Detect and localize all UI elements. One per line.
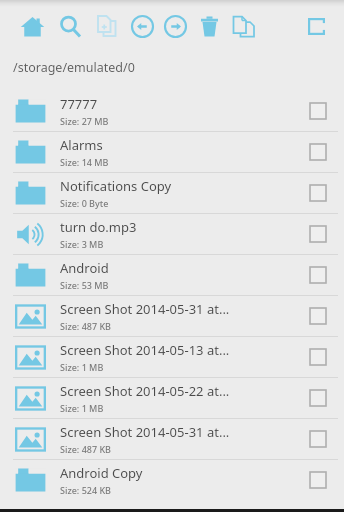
button[interactable]: Paste bbox=[228, 11, 258, 41]
staticText: Size: 1 MB bbox=[60, 361, 104, 373]
button[interactable]: Search bbox=[55, 11, 85, 41]
button[interactable]: Screen Shot 2014-05-22 at... bbox=[0, 378, 344, 418]
staticText: 77777 bbox=[60, 95, 98, 113]
button[interactable]: Delete bbox=[194, 11, 224, 41]
staticText: Android bbox=[60, 259, 109, 277]
button[interactable]: Alarms bbox=[0, 132, 344, 172]
button[interactable]: turn do.mp3 bbox=[0, 214, 344, 254]
staticText: Size: 27 MB bbox=[60, 115, 109, 127]
staticText: /storage/emulated/0 bbox=[13, 59, 135, 76]
button[interactable]: Android Copy bbox=[0, 460, 344, 500]
button[interactable]: Select 77777 bbox=[299, 92, 337, 130]
staticText: Screen Shot 2014-05-22 at... bbox=[60, 382, 230, 400]
button[interactable]: Copy bbox=[92, 11, 122, 41]
button[interactable]: Select Android Copy bbox=[299, 461, 337, 499]
button[interactable]: Select Alarms bbox=[299, 133, 337, 171]
staticText: Alarms bbox=[60, 136, 103, 154]
button[interactable]: Forward bbox=[160, 11, 190, 41]
staticText: Screen Shot 2014-05-31 at... bbox=[60, 300, 230, 318]
staticText: Size: 14 MB bbox=[60, 156, 109, 168]
button[interactable]: Select Screen Shot 2014-05-31 at... bbox=[299, 297, 337, 335]
staticText: Size: 487 KB bbox=[60, 443, 111, 455]
staticText: Size: 524 KB bbox=[60, 484, 111, 496]
button[interactable]: Screen Shot 2014-05-31 at... bbox=[0, 296, 344, 336]
staticText: Android Copy bbox=[60, 464, 143, 482]
staticText: Screen Shot 2014-05-31 at... bbox=[60, 423, 230, 441]
staticText: Size: 1 MB bbox=[60, 402, 104, 414]
button[interactable]: Select turn do.mp3 bbox=[299, 215, 337, 253]
staticText: turn do.mp3 bbox=[60, 218, 137, 236]
button[interactable]: Android bbox=[0, 255, 344, 295]
button[interactable]: Select Notifications Copy bbox=[299, 174, 337, 212]
button[interactable]: Screen Shot 2014-05-13 at... bbox=[0, 337, 344, 377]
staticText: Size: 53 MB bbox=[60, 279, 109, 291]
button[interactable]: Home bbox=[17, 11, 47, 41]
button[interactable]: Select all bbox=[301, 11, 331, 41]
button[interactable]: Select Screen Shot 2014-05-22 at... bbox=[299, 379, 337, 417]
button[interactable]: /storage/emulated/0 bbox=[0, 44, 344, 91]
staticText: Screen Shot 2014-05-13 at... bbox=[60, 341, 230, 359]
button[interactable]: Screen Shot 2014-05-31 at... bbox=[0, 419, 344, 459]
button[interactable]: Select Android bbox=[299, 256, 337, 294]
button[interactable]: Notifications Copy bbox=[0, 173, 344, 213]
button[interactable]: Select Screen Shot 2014-05-31 at... bbox=[299, 420, 337, 458]
button[interactable]: Back bbox=[127, 11, 157, 41]
button[interactable]: 77777 bbox=[0, 91, 344, 131]
staticText: Notifications Copy bbox=[60, 177, 172, 195]
staticText: Size: 0 Byte bbox=[60, 197, 109, 209]
staticText: Size: 3 MB bbox=[60, 238, 104, 250]
staticText: Size: 487 KB bbox=[60, 320, 111, 332]
button[interactable]: Select Screen Shot 2014-05-13 at... bbox=[299, 338, 337, 376]
